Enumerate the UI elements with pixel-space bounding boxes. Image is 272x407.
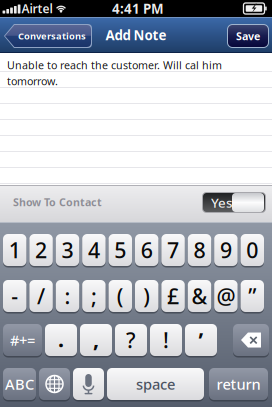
staticText: Conversations	[18, 30, 86, 42]
button[interactable]: ,	[80, 322, 112, 357]
staticText: space	[136, 374, 175, 394]
button[interactable]: :	[56, 278, 79, 313]
button[interactable]: !	[150, 322, 182, 357]
staticText: ?	[126, 326, 136, 354]
button[interactable]: 9	[214, 232, 238, 267]
staticText: ,	[93, 325, 99, 353]
staticText: Yes	[211, 194, 232, 211]
staticText: 5	[114, 236, 126, 264]
staticText: /	[37, 282, 45, 310]
button[interactable]: /	[29, 278, 53, 313]
button[interactable]: (	[109, 278, 132, 313]
staticText: 4:41 PM	[112, 0, 164, 17]
staticText: 4	[88, 236, 100, 264]
staticText: &	[191, 282, 207, 310]
button[interactable]: &	[188, 278, 211, 313]
button[interactable]: ;	[82, 278, 106, 313]
staticText: 9	[220, 236, 232, 264]
staticText: ABC	[5, 374, 34, 394]
button[interactable]: Yes	[202, 192, 266, 213]
staticText: #+=	[10, 330, 35, 350]
button[interactable]: 5	[109, 232, 132, 267]
button[interactable]: 6	[135, 232, 158, 267]
button[interactable]: -	[3, 278, 26, 313]
button[interactable]: 2	[29, 232, 53, 267]
button[interactable]: space	[107, 366, 204, 401]
button[interactable]: 7	[161, 232, 185, 267]
staticText: 2	[35, 236, 47, 264]
button[interactable]: 1	[3, 232, 26, 267]
staticText: (	[117, 282, 124, 310]
staticText: 0	[246, 236, 258, 264]
staticText: £	[167, 282, 179, 310]
button[interactable]: Save	[227, 24, 269, 48]
button[interactable]: )	[135, 278, 158, 313]
staticText: return	[216, 374, 260, 394]
button[interactable]: £	[161, 278, 185, 313]
staticText: )	[143, 282, 150, 310]
button[interactable]: #+=	[3, 322, 42, 357]
button[interactable]: ?	[115, 322, 147, 357]
staticText: .	[58, 325, 64, 353]
button[interactable]: 3	[56, 232, 79, 267]
button[interactable]: Dictate	[73, 366, 104, 401]
button[interactable]: 8	[188, 232, 211, 267]
staticText: @	[216, 282, 235, 310]
button[interactable]: 0	[241, 232, 264, 267]
button[interactable]: Conversations	[4, 24, 92, 48]
staticText: 7	[167, 236, 179, 264]
staticText: Unable to reach the customer. Will cal h…	[7, 58, 222, 72]
staticText: Add Note	[105, 26, 166, 44]
staticText: 6	[141, 236, 153, 264]
staticText: 3	[61, 236, 73, 264]
staticText: Save	[236, 29, 260, 43]
staticText: :	[64, 282, 70, 310]
staticText: 1	[9, 236, 21, 264]
button[interactable]: Change keyboard	[39, 366, 70, 401]
staticText: ;	[91, 282, 97, 310]
staticText: Show To Contact	[13, 195, 102, 209]
staticText: ’	[198, 326, 203, 354]
button[interactable]: return	[209, 366, 268, 401]
button[interactable]: ”	[241, 278, 264, 313]
staticText: !	[163, 326, 169, 354]
button[interactable]: @	[214, 278, 238, 313]
staticText: 8	[193, 236, 205, 264]
staticText: ”	[248, 282, 256, 310]
button[interactable]: Delete	[233, 322, 269, 357]
staticText: Airtel	[21, 0, 52, 16]
staticText: -	[11, 282, 18, 310]
button[interactable]: ABC	[3, 366, 36, 401]
button[interactable]: ’	[185, 322, 217, 357]
button[interactable]: .	[45, 322, 77, 357]
button[interactable]: 4	[82, 232, 106, 267]
staticText: tomorrow.	[7, 74, 58, 88]
